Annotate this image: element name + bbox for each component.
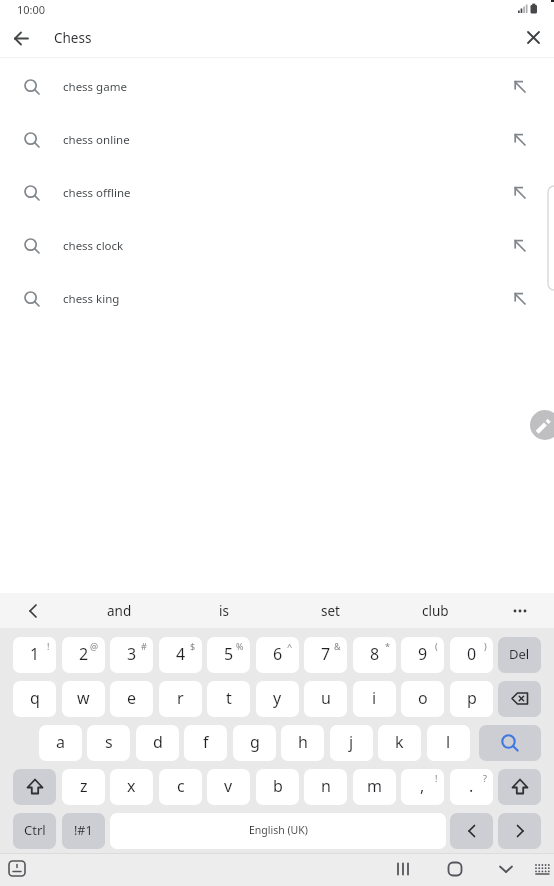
- button[interactable]: English (UK): [110, 813, 446, 849]
- staticText: 9: [418, 643, 428, 665]
- button[interactable]: [510, 183, 530, 203]
- button[interactable]: z: [62, 769, 105, 805]
- staticText: .: [469, 775, 474, 797]
- button[interactable]: x: [110, 769, 153, 805]
- button[interactable]: [494, 857, 518, 881]
- button[interactable]: chess offline: [0, 166, 554, 219]
- staticText: n: [321, 775, 331, 797]
- button[interactable]: 4: [159, 637, 202, 673]
- button[interactable]: 6: [256, 637, 299, 673]
- button[interactable]: 2: [62, 637, 105, 673]
- button[interactable]: [391, 857, 415, 881]
- button[interactable]: a: [39, 725, 82, 761]
- button[interactable]: [450, 813, 493, 849]
- button[interactable]: l: [427, 725, 470, 761]
- button[interactable]: chess king: [0, 272, 554, 325]
- button[interactable]: s: [87, 725, 130, 761]
- button[interactable]: and: [74, 593, 164, 628]
- button[interactable]: club: [390, 593, 480, 628]
- button[interactable]: chess game: [0, 60, 554, 113]
- button[interactable]: .: [450, 769, 493, 805]
- button[interactable]: 5: [207, 637, 250, 673]
- button[interactable]: [507, 598, 533, 624]
- button[interactable]: g: [233, 725, 276, 761]
- button[interactable]: [530, 410, 554, 440]
- button[interactable]: y: [256, 681, 299, 717]
- button[interactable]: k: [378, 725, 421, 761]
- staticText: k: [395, 731, 404, 753]
- staticText: v: [224, 775, 233, 797]
- staticText: s: [105, 731, 113, 753]
- staticText: b: [273, 775, 283, 797]
- button[interactable]: 8: [353, 637, 396, 673]
- button[interactable]: Del: [498, 637, 541, 673]
- staticText: p: [467, 687, 477, 709]
- button[interactable]: 0: [450, 637, 493, 673]
- button[interactable]: [510, 130, 530, 150]
- button[interactable]: [20, 598, 46, 624]
- staticText: Del: [509, 645, 530, 663]
- staticText: t: [226, 687, 232, 709]
- button[interactable]: chess online: [0, 113, 554, 166]
- button[interactable]: Ctrl: [13, 813, 56, 849]
- button[interactable]: 1: [13, 637, 56, 673]
- button[interactable]: [510, 77, 530, 97]
- staticText: l: [446, 731, 451, 753]
- button[interactable]: ,: [401, 769, 444, 805]
- staticText: ?: [483, 772, 487, 784]
- staticText: (: [435, 640, 438, 652]
- staticText: c: [177, 775, 185, 797]
- button[interactable]: d: [136, 725, 179, 761]
- button[interactable]: 9: [401, 637, 444, 673]
- staticText: chess king: [63, 291, 120, 307]
- button[interactable]: c: [159, 769, 202, 805]
- button[interactable]: [498, 769, 541, 805]
- button[interactable]: [498, 813, 541, 849]
- button[interactable]: [479, 725, 541, 761]
- button[interactable]: !#1: [62, 813, 105, 849]
- button[interactable]: [443, 857, 467, 881]
- staticText: f: [203, 731, 209, 753]
- button[interactable]: f: [184, 725, 227, 761]
- button[interactable]: 3: [110, 637, 153, 673]
- button[interactable]: u: [304, 681, 347, 717]
- staticText: ^: [287, 640, 293, 652]
- button[interactable]: v: [207, 769, 250, 805]
- staticText: r: [177, 687, 184, 709]
- staticText: 8: [370, 643, 380, 665]
- button[interactable]: w: [62, 681, 105, 717]
- button[interactable]: o: [401, 681, 444, 717]
- button[interactable]: q: [13, 681, 56, 717]
- button[interactable]: i: [353, 681, 396, 717]
- button[interactable]: chess clock: [0, 219, 554, 272]
- button[interactable]: n: [304, 769, 347, 805]
- staticText: y: [273, 687, 282, 709]
- button[interactable]: [498, 681, 541, 717]
- button[interactable]: 7: [304, 637, 347, 673]
- button[interactable]: [13, 769, 56, 805]
- button[interactable]: [521, 25, 546, 50]
- staticText: $: [190, 640, 196, 652]
- button[interactable]: [9, 26, 34, 51]
- staticText: m: [367, 775, 382, 797]
- staticText: 4: [176, 643, 186, 665]
- button[interactable]: [531, 857, 554, 881]
- button[interactable]: m: [353, 769, 396, 805]
- button[interactable]: h: [281, 725, 324, 761]
- staticText: set: [321, 602, 340, 620]
- button[interactable]: [510, 236, 530, 256]
- button[interactable]: [510, 289, 530, 309]
- staticText: o: [418, 687, 428, 709]
- staticText: chess offline: [63, 185, 131, 201]
- button[interactable]: t: [207, 681, 250, 717]
- staticText: x: [127, 775, 136, 797]
- button[interactable]: b: [256, 769, 299, 805]
- button[interactable]: e: [110, 681, 153, 717]
- button[interactable]: is: [179, 593, 269, 628]
- button[interactable]: j: [330, 725, 373, 761]
- button[interactable]: set: [285, 593, 375, 628]
- button[interactable]: [6, 857, 30, 881]
- button[interactable]: p: [450, 681, 493, 717]
- staticText: a: [56, 731, 65, 753]
- button[interactable]: r: [159, 681, 202, 717]
